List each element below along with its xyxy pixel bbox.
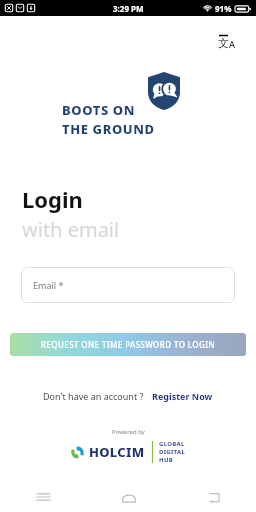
staticText: with email — [22, 216, 120, 243]
staticText: 3:29 PM — [113, 3, 144, 14]
button[interactable]: Register Now — [151, 388, 214, 404]
staticText: A — [229, 38, 235, 50]
staticText: HOLCIM — [89, 443, 145, 461]
button[interactable]: Home — [86, 482, 171, 512]
staticText: REQUEST ONE TIME PASSWORD TO LOGIN — [41, 339, 216, 350]
staticText: Don't have an account ? — [43, 390, 144, 402]
button[interactable]: Email * — [21, 267, 235, 303]
staticText: GLOBAL — [159, 440, 185, 448]
staticText: Login — [22, 184, 83, 214]
button[interactable]: REQUEST ONE TIME PASSWORD TO LOGIN — [10, 333, 246, 356]
button[interactable]: Recent apps — [0, 482, 86, 512]
staticText: THE GROUND — [62, 120, 155, 138]
button[interactable]: Translate language — [206, 22, 246, 62]
staticText: DIGITAL — [159, 448, 186, 456]
staticText: 文 — [218, 36, 229, 50]
staticText: BOOTS ON — [62, 101, 136, 119]
staticText: Register Now — [152, 390, 213, 402]
staticText: Email * — [33, 279, 64, 291]
staticText: 91% — [215, 3, 232, 14]
staticText: HUB — [159, 456, 174, 464]
button[interactable]: Back — [171, 482, 256, 512]
staticText: Powered by — [112, 428, 145, 436]
